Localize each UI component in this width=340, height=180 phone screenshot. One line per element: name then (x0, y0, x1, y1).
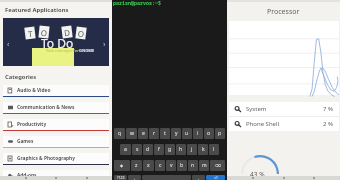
button[interactable]: Recents (82, 176, 92, 180)
staticText: 7 % (323, 105, 333, 113)
staticText: m (202, 162, 207, 169)
staticText: a (124, 146, 127, 153)
staticText: T (27, 28, 34, 39)
button[interactable]: Games (3, 136, 109, 148)
button[interactable]: c (155, 160, 165, 171)
staticText: g (168, 146, 172, 153)
button[interactable]: Add-ons (3, 170, 109, 180)
button[interactable]: Communication & News (3, 102, 109, 114)
button[interactable]: v (166, 160, 176, 171)
staticText: Games (17, 138, 34, 145)
button[interactable]: . (192, 175, 205, 180)
staticText: h (179, 146, 183, 153)
button[interactable]: g (165, 144, 175, 155)
staticText: o (207, 130, 211, 137)
button[interactable]: b (177, 160, 187, 171)
button[interactable]: s (132, 144, 142, 155)
button[interactable]: Home (51, 176, 61, 180)
button[interactable]: Home (279, 176, 289, 180)
button[interactable]: Phone Shell (235, 117, 333, 131)
staticText: O (40, 27, 48, 38)
staticText: r (153, 130, 156, 137)
button[interactable]: o (204, 128, 214, 139)
button[interactable]: q (114, 128, 125, 139)
staticText: v (170, 162, 173, 169)
button[interactable]: k (198, 144, 208, 155)
staticText: › (103, 38, 106, 46)
staticText: f (158, 146, 160, 153)
staticText: p (218, 130, 222, 137)
button[interactable]: w (126, 128, 137, 139)
staticText: n (191, 162, 195, 169)
staticText: t (164, 130, 166, 137)
staticText: q (118, 130, 122, 137)
button[interactable]: a (120, 144, 131, 155)
button[interactable]: l (209, 144, 219, 155)
staticText: , (134, 175, 136, 180)
button[interactable]: ?123 (114, 175, 127, 180)
staticText: GNOME (79, 48, 95, 53)
staticText: Graphics & Photography (17, 155, 75, 162)
staticText: ⏎ (214, 175, 218, 180)
staticText: . (198, 175, 200, 180)
staticText: u (185, 130, 189, 137)
staticText: Featured Applications (5, 6, 69, 14)
staticText: x (147, 162, 150, 169)
staticText: O (77, 28, 86, 39)
button[interactable]: ◆ (114, 160, 130, 171)
staticText: s (136, 146, 139, 153)
staticText: Add-ons (17, 172, 37, 179)
button[interactable]: Audio & Video (3, 85, 109, 97)
staticText: Productivity (17, 121, 47, 128)
button[interactable]: Recents (309, 176, 319, 180)
button[interactable]: t (160, 128, 170, 139)
staticText: Processor (267, 7, 300, 17)
button[interactable]: ⌫ (210, 160, 225, 171)
button[interactable]: ⏎ (206, 175, 225, 180)
button[interactable]: Previous (4, 38, 12, 46)
staticText: b (180, 162, 184, 169)
staticText: System (246, 105, 267, 113)
button[interactable]: System (235, 102, 333, 116)
button[interactable]: T (3, 18, 109, 66)
staticText: e (142, 130, 145, 137)
button[interactable]: m (199, 160, 209, 171)
button[interactable]: n (188, 160, 198, 171)
button[interactable]: Graphics & Photography (3, 153, 109, 165)
button[interactable]: p (215, 128, 225, 139)
button[interactable]: r (149, 128, 159, 139)
staticText: parisn@parvos:~$ (113, 0, 162, 7)
staticText: ‹ (7, 38, 10, 46)
button[interactable]: f (154, 144, 164, 155)
staticText: l (213, 146, 215, 153)
button[interactable]: j (187, 144, 197, 155)
button[interactable]: Back (21, 176, 31, 180)
staticText: z (135, 162, 138, 169)
staticText: Task manager for (46, 48, 79, 53)
staticText: c (159, 162, 162, 169)
button[interactable]: , (128, 175, 141, 180)
staticText: To Do (41, 35, 74, 51)
staticText: k (202, 146, 205, 153)
staticText: ◆ (120, 163, 124, 168)
button[interactable]: Back (248, 176, 258, 180)
button[interactable]: h (176, 144, 186, 155)
button[interactable]: i (193, 128, 203, 139)
staticText: w (130, 130, 134, 137)
button[interactable]: y (171, 128, 181, 139)
staticText: d (146, 146, 150, 153)
staticText: Phone Shell (246, 120, 280, 128)
staticText: D (63, 27, 71, 38)
staticText: 2 % (323, 120, 333, 128)
button[interactable]: Next (100, 38, 108, 46)
button[interactable]: z (131, 160, 142, 171)
button[interactable]: u (182, 128, 192, 139)
button[interactable]: Productivity (3, 119, 109, 131)
button[interactable]: e (138, 128, 148, 139)
staticText: Audio & Video (17, 87, 51, 94)
button[interactable]: d (143, 144, 153, 155)
staticText: i (197, 130, 199, 137)
button[interactable]: x (143, 160, 154, 171)
staticText: ⌫ (215, 163, 221, 168)
